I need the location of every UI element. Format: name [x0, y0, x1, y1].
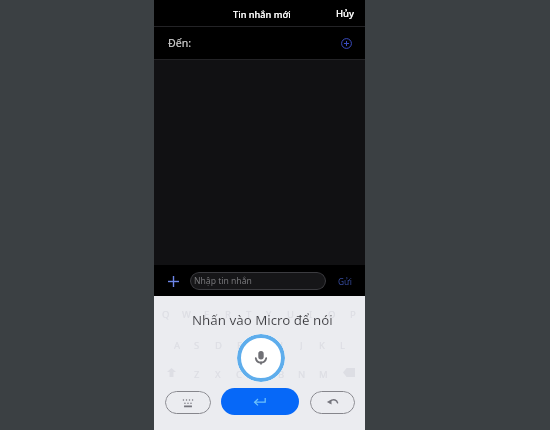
button[interactable]: Microphone [237, 334, 285, 382]
staticText: E [204, 308, 210, 320]
button[interactable]: Gửi [332, 272, 357, 290]
staticText: Z [194, 368, 200, 380]
staticText: W [182, 308, 191, 320]
button[interactable]: Attach [164, 272, 182, 290]
staticText: M [319, 368, 328, 380]
staticText: F [237, 339, 242, 351]
staticText: Gửi [338, 276, 352, 287]
button[interactable]: Undo [310, 391, 355, 414]
staticText: U [287, 308, 294, 320]
button[interactable]: Hủy [326, 2, 365, 25]
staticText: N [298, 368, 306, 380]
staticText: J [300, 339, 303, 351]
staticText: T [246, 308, 252, 320]
staticText: Tin nhắn mới [233, 8, 291, 21]
staticText: Q [162, 308, 170, 320]
staticText: Y [266, 308, 272, 320]
button[interactable]: Add recipient [338, 35, 354, 51]
staticText: H [276, 339, 284, 351]
button[interactable]: Nhập tin nhắn [190, 272, 326, 290]
staticText: X [215, 368, 221, 380]
staticText: L [340, 339, 345, 351]
staticText: O [328, 308, 336, 320]
button[interactable]: Enter [221, 388, 299, 415]
staticText: Đến: [168, 36, 192, 50]
staticText: Hủy [336, 7, 355, 20]
staticText: C [236, 368, 243, 380]
staticText: I [309, 308, 313, 320]
staticText: A [174, 339, 181, 351]
staticText: R [225, 308, 231, 320]
staticText: B [278, 368, 285, 380]
staticText: P [350, 308, 356, 320]
button[interactable]: Keyboard [165, 391, 211, 414]
staticText: K [319, 339, 325, 351]
staticText: D [215, 339, 222, 351]
staticText: Nhập tin nhắn [194, 275, 252, 287]
staticText: V [257, 368, 263, 380]
staticText: S [194, 339, 200, 351]
staticText: Nhấn vào Micro để nói [192, 311, 333, 329]
